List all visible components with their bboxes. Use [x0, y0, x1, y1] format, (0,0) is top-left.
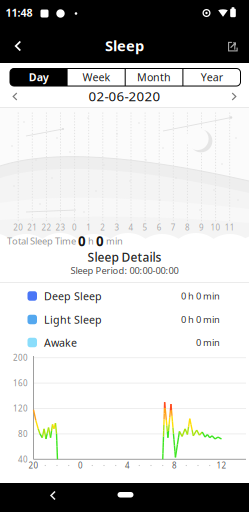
button[interactable]: Previous day: [5, 87, 25, 106]
staticText: Light Sleep: [44, 312, 102, 327]
staticText: 22: [41, 222, 51, 233]
staticText: min: [106, 235, 123, 247]
staticText: 9: [199, 222, 204, 233]
staticText: 8: [185, 222, 190, 233]
staticText: 0: [78, 460, 83, 471]
staticText: 0 h 0 min: [181, 313, 220, 326]
staticText: 120: [13, 403, 28, 414]
button[interactable]: Month: [126, 68, 183, 86]
staticText: 11: [225, 222, 235, 233]
staticText: 0 min: [196, 336, 220, 349]
staticText: 2: [100, 222, 105, 233]
staticText: 20: [28, 460, 38, 471]
staticText: 8: [172, 460, 177, 471]
button[interactable]: Week: [68, 68, 125, 86]
staticText: 12: [216, 460, 226, 471]
staticText: 6: [157, 222, 162, 233]
staticText: Awake: [44, 335, 77, 350]
staticText: Month: [137, 70, 171, 84]
staticText: 80: [18, 429, 28, 439]
staticText: 20: [13, 222, 23, 233]
staticText: 5: [143, 222, 148, 233]
staticText: 7: [171, 222, 176, 233]
button[interactable]: Share: [220, 34, 244, 58]
staticText: 1: [86, 222, 91, 233]
staticText: 200: [13, 352, 28, 363]
staticText: 11:48: [5, 5, 32, 20]
staticText: 10: [211, 222, 221, 233]
staticText: Day: [29, 70, 49, 84]
staticText: Week: [82, 70, 110, 84]
staticText: Total Sleep Time: [7, 235, 76, 247]
button[interactable]: Year: [183, 68, 240, 86]
staticText: 21: [27, 222, 37, 233]
staticText: 40: [18, 454, 28, 465]
button[interactable]: Back: [43, 486, 62, 505]
staticText: 0: [96, 232, 104, 250]
staticText: Sleep Details: [87, 249, 161, 265]
staticText: Sleep Period: 00:00-00:00: [70, 264, 178, 277]
button[interactable]: Day: [10, 68, 67, 86]
staticText: 23: [55, 222, 65, 233]
button[interactable]: Back: [5, 34, 29, 58]
staticText: 0 h 0 min: [181, 290, 220, 302]
button[interactable]: Next day: [224, 87, 244, 106]
staticText: 0: [72, 222, 77, 233]
staticText: 0: [78, 232, 86, 250]
staticText: Deep Sleep: [44, 289, 102, 303]
staticText: 160: [13, 378, 28, 388]
staticText: 3: [114, 222, 119, 233]
staticText: 4: [125, 460, 130, 471]
staticText: 02-06-2020: [88, 87, 160, 105]
button[interactable]: Home: [116, 485, 135, 504]
staticText: h: [88, 235, 94, 247]
staticText: Year: [201, 70, 223, 84]
staticText: Sleep: [105, 36, 144, 55]
staticText: 4: [128, 222, 133, 233]
